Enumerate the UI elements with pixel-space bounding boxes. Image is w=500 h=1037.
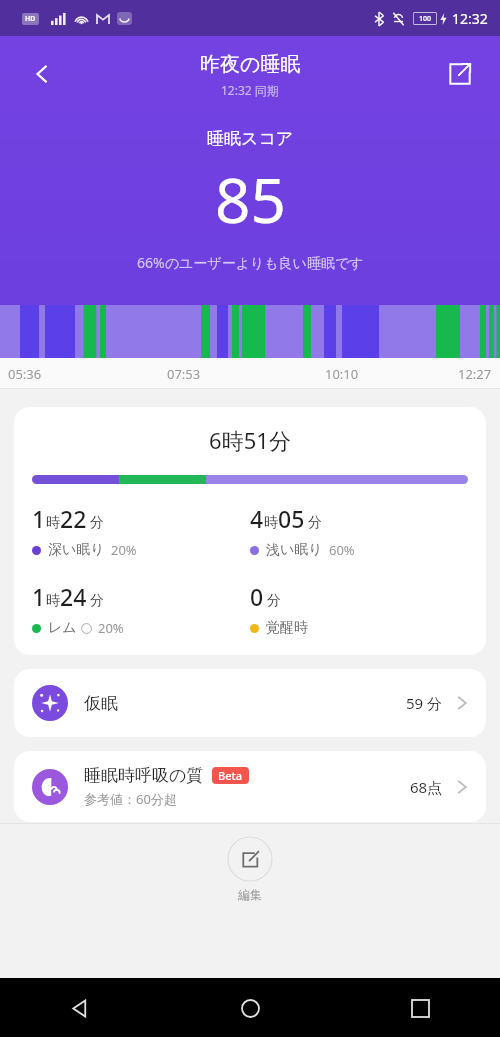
staticText: 分 bbox=[90, 592, 104, 610]
staticText: レム bbox=[48, 619, 77, 637]
staticText: 07:53 bbox=[167, 365, 201, 383]
staticText: 66%のユーザーよりも良い睡眠です bbox=[137, 253, 364, 272]
staticText: Beta bbox=[218, 768, 243, 783]
staticText: 分 bbox=[267, 592, 281, 610]
staticText: 20% bbox=[98, 619, 124, 637]
staticText: 時 bbox=[46, 592, 60, 610]
staticText: 85 bbox=[215, 157, 286, 241]
staticText: 1 bbox=[32, 581, 46, 612]
button[interactable]: Recents bbox=[400, 988, 440, 1028]
staticText: 仮眠 bbox=[84, 693, 118, 714]
staticText: 分 bbox=[90, 514, 104, 532]
staticText: 60% bbox=[329, 541, 355, 559]
staticText: 昨夜の睡眠 bbox=[200, 52, 301, 77]
staticText: 時 bbox=[264, 514, 278, 532]
staticText: 68点 bbox=[410, 777, 443, 797]
staticText: 睡眠時呼吸の質 bbox=[84, 765, 204, 786]
staticText: 10:10 bbox=[325, 365, 359, 383]
staticText: 浅い眠り bbox=[266, 541, 323, 559]
button[interactable]: Share bbox=[436, 50, 484, 98]
staticText: 参考値：60分超 bbox=[84, 790, 177, 808]
staticText: 22 bbox=[60, 503, 87, 534]
staticText: 覚醒時 bbox=[266, 619, 308, 637]
staticText: 20% bbox=[111, 541, 137, 559]
staticText: 05:36 bbox=[8, 365, 42, 383]
button[interactable]: 仮眠 bbox=[14, 669, 486, 737]
staticText: 100 bbox=[419, 14, 432, 24]
staticText: 12:32 bbox=[452, 9, 488, 28]
staticText: 12:27 bbox=[458, 365, 492, 383]
staticText: 睡眠スコア bbox=[207, 128, 294, 149]
staticText: 編集 bbox=[238, 887, 262, 902]
button[interactable]: Back bbox=[60, 988, 100, 1028]
staticText: 24 bbox=[60, 581, 87, 612]
staticText: 59 分 bbox=[406, 693, 443, 713]
staticText: 深い眠り bbox=[48, 541, 105, 559]
staticText: 1 bbox=[32, 503, 46, 534]
staticText: HD bbox=[25, 14, 36, 24]
button[interactable]: Back bbox=[18, 50, 66, 98]
staticText: 05 bbox=[278, 503, 305, 534]
staticText: 分 bbox=[308, 514, 322, 532]
button[interactable]: 編集 bbox=[227, 836, 273, 882]
button[interactable]: 睡眠時呼吸の質 bbox=[14, 751, 486, 822]
staticText: 6時51分 bbox=[32, 425, 468, 455]
staticText: 0 bbox=[250, 581, 264, 612]
staticText: 12:32 同期 bbox=[221, 82, 279, 98]
staticText: 4 bbox=[250, 503, 264, 534]
staticText: 時 bbox=[46, 514, 60, 532]
button[interactable]: Home bbox=[230, 988, 270, 1028]
